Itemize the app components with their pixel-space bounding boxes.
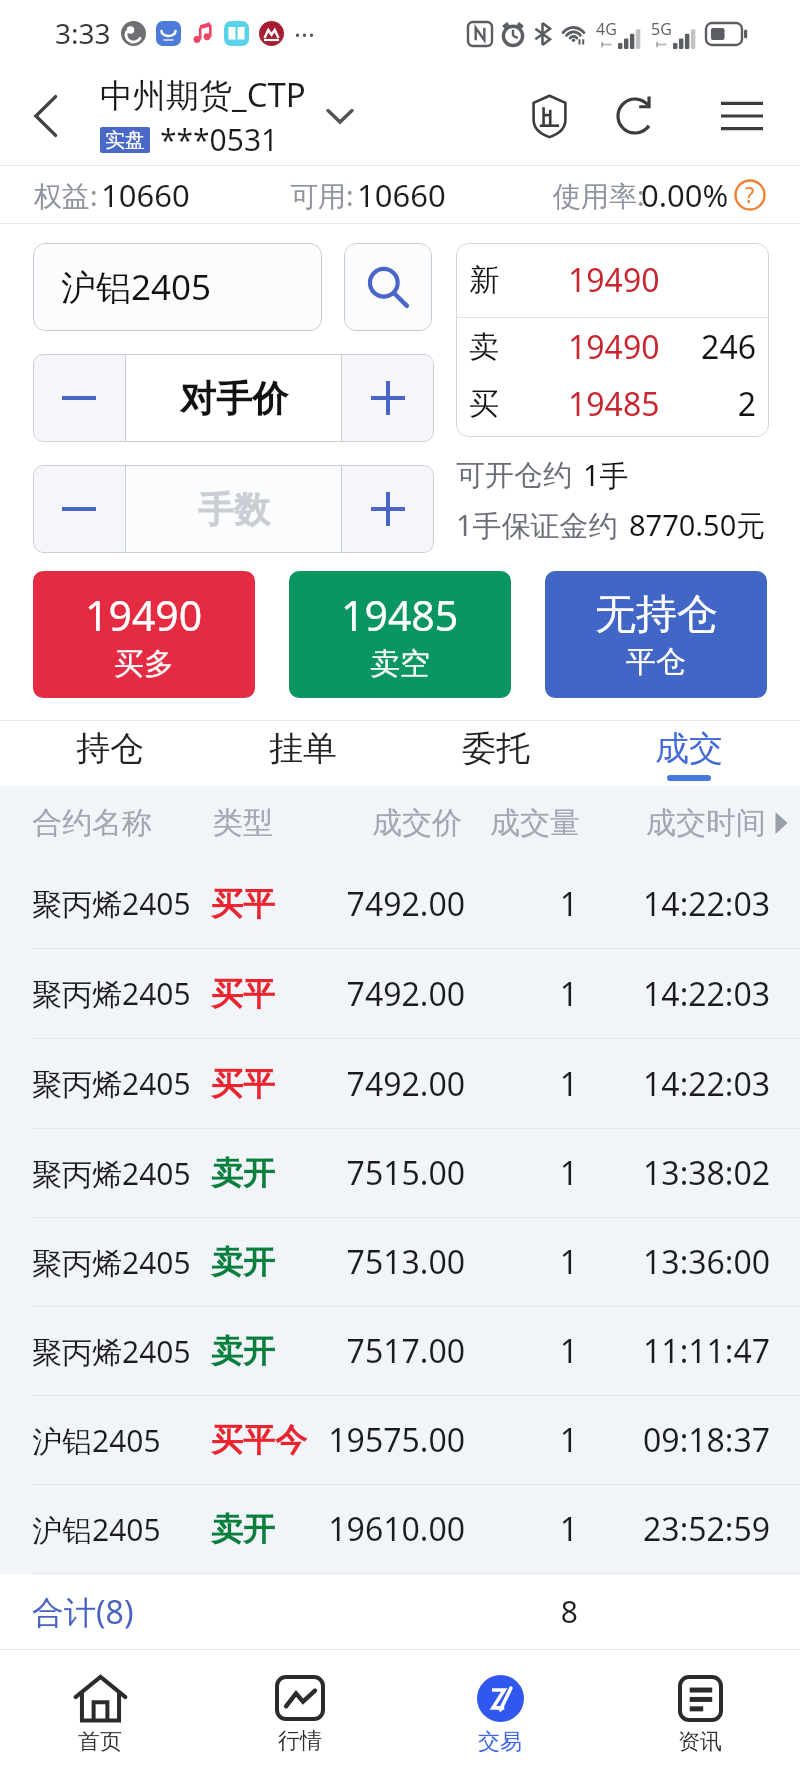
staticText: 1手 — [583, 455, 629, 495]
staticText: 聚丙烯2405 — [32, 883, 191, 924]
button[interactable]: 聚丙烯2405 — [0, 1039, 800, 1128]
staticText: 手数 — [198, 487, 270, 532]
button[interactable]: 手数 — [126, 465, 341, 553]
button[interactable]: Refresh — [587, 68, 683, 164]
button[interactable]: 19490 — [33, 571, 255, 698]
button[interactable]: 资讯 — [600, 1650, 800, 1778]
staticText: 买多 — [114, 645, 174, 683]
staticText: 11:11:47 — [0, 1329, 770, 1373]
staticText: 14:22:03 — [0, 972, 770, 1016]
staticText: 沪铝2405 — [61, 263, 212, 311]
button[interactable]: 聚丙烯2405 — [0, 859, 800, 948]
button[interactable]: 首页 — [0, 1650, 200, 1778]
staticText: 买平 — [211, 974, 275, 1014]
button[interactable]: 成交 — [592, 721, 785, 786]
button[interactable]: 聚丙烯2405 — [0, 1307, 800, 1395]
button[interactable]: 新 — [456, 243, 769, 437]
staticText: 1 — [0, 1240, 578, 1284]
button[interactable]: Decrease — [33, 354, 125, 442]
button[interactable]: Expand — [310, 86, 370, 146]
staticText: 平仓 — [626, 643, 686, 681]
button[interactable]: 沪铝2405 — [33, 243, 322, 331]
button[interactable]: 无持仓 — [545, 571, 767, 698]
staticText: 7492.00 — [0, 972, 465, 1016]
staticText: 1 — [0, 882, 578, 926]
staticText: 聚丙烯2405 — [32, 1063, 191, 1104]
staticText: 无持仓 — [595, 589, 718, 641]
button[interactable]: Increase — [342, 354, 434, 442]
staticText: 卖开 — [211, 1331, 275, 1371]
button[interactable]: 中州期货_CTP — [100, 72, 310, 160]
staticText: 23:52:59 — [0, 1507, 770, 1551]
staticText: 7513.00 — [0, 1240, 465, 1284]
button[interactable]: Search — [344, 243, 432, 331]
staticText: 7492.00 — [0, 882, 465, 926]
staticText: 1 — [0, 1507, 578, 1551]
button[interactable]: Help — [734, 179, 766, 211]
staticText: 1 — [0, 1151, 578, 1195]
staticText: 1手保证金约 — [456, 505, 618, 545]
staticText: 聚丙烯2405 — [32, 1331, 191, 1372]
staticText: 8770.50元 — [629, 505, 766, 545]
staticText: 委托 — [462, 727, 530, 770]
button[interactable]: Risk control — [498, 66, 601, 165]
button[interactable]: 对手价 — [126, 354, 341, 442]
staticText: 8 — [0, 1591, 578, 1632]
button[interactable]: 交易 — [400, 1650, 600, 1778]
staticText: 卖 — [469, 328, 499, 366]
button[interactable]: 行情 — [200, 1650, 400, 1778]
staticText: 19485 — [341, 587, 459, 643]
staticText: 13:38:02 — [0, 1151, 770, 1195]
staticText: 19610.00 — [0, 1507, 465, 1551]
button[interactable]: Back — [0, 66, 100, 165]
staticText: 2 — [456, 382, 756, 426]
staticText: 1 — [0, 972, 578, 1016]
button[interactable]: 挂单 — [206, 721, 399, 786]
button[interactable]: Menu — [697, 71, 787, 161]
staticText: 对手价 — [180, 376, 288, 421]
staticText: 10660 — [357, 174, 446, 216]
staticText: 19575.00 — [0, 1418, 465, 1462]
staticText: 实盘 — [105, 128, 145, 153]
staticText: 19485 — [568, 382, 660, 426]
button[interactable]: 持仓 — [13, 721, 206, 786]
staticText: 使用率: — [553, 176, 645, 214]
staticText: 聚丙烯2405 — [32, 1153, 191, 1194]
staticText: ***0531 — [160, 119, 279, 160]
staticText: 3:33 — [55, 14, 111, 52]
button[interactable]: Decrease — [33, 465, 125, 553]
staticText: 成交量 — [0, 804, 580, 842]
staticText: 合约名称 — [32, 804, 152, 842]
button[interactable]: 聚丙烯2405 — [0, 1218, 800, 1306]
staticText: 4G — [596, 18, 617, 40]
staticText: 中州期货_CTP — [100, 72, 306, 117]
staticText: 7515.00 — [0, 1151, 465, 1195]
staticText: 7517.00 — [0, 1329, 465, 1373]
staticText: 卖开 — [211, 1242, 275, 1282]
staticText: 交易 — [478, 1728, 522, 1756]
staticText: 成交价 — [0, 804, 462, 842]
staticText: 权益: — [34, 176, 98, 214]
button[interactable]: 委托 — [399, 721, 592, 786]
button[interactable]: 沪铝2405 — [0, 1485, 800, 1573]
staticText: 新 — [469, 261, 499, 299]
button[interactable]: 聚丙烯2405 — [0, 949, 800, 1038]
staticText: 行情 — [278, 1727, 322, 1755]
button[interactable]: 19485 — [289, 571, 511, 698]
staticText: 可用: — [290, 176, 354, 214]
staticText: 7492.00 — [0, 1062, 465, 1106]
staticText: 19490 — [568, 325, 660, 369]
staticText: 1 — [0, 1062, 578, 1106]
staticText: 聚丙烯2405 — [32, 1242, 191, 1283]
staticText: 10660 — [101, 174, 190, 216]
staticText: 0.00% — [641, 174, 729, 216]
staticText: 卖开 — [211, 1153, 275, 1193]
staticText: 成交 — [655, 727, 723, 770]
staticText: 13:36:00 — [0, 1240, 770, 1284]
button[interactable]: 聚丙烯2405 — [0, 1129, 800, 1217]
button[interactable]: 沪铝2405 — [0, 1396, 800, 1484]
staticText: 买平 — [211, 1064, 275, 1104]
button[interactable]: Increase — [342, 465, 434, 553]
staticText: 类型 — [213, 804, 273, 842]
staticText: ··· — [294, 16, 315, 51]
